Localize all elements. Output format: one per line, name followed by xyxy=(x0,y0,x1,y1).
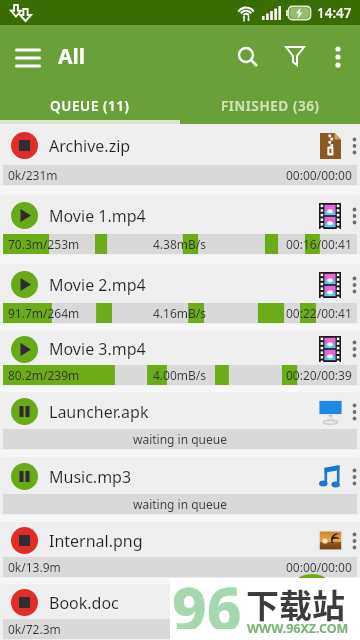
staticText: 0k/72.3m xyxy=(8,621,61,637)
staticText: Movie 3.mp4 xyxy=(49,338,146,360)
button[interactable]: Movie 1.mp4 xyxy=(0,195,360,233)
staticText: 96 xyxy=(172,567,242,629)
staticText: Book.doc xyxy=(49,592,119,614)
button[interactable]: Movie 2.mp4 xyxy=(0,264,360,302)
staticText: waiting in queue xyxy=(133,431,227,447)
button[interactable] xyxy=(274,33,318,81)
button[interactable]: Movie 3.mp4 xyxy=(0,331,360,364)
staticText: Movie 1.mp4 xyxy=(49,205,146,227)
staticText: 00:00/00:00 xyxy=(286,559,352,575)
staticText: Movie 2.mp4 xyxy=(49,274,146,296)
staticText: 14:47 xyxy=(317,4,352,22)
staticText: 4.38mB/s xyxy=(153,236,207,252)
staticText: 下载站 xyxy=(246,580,345,628)
staticText: 0k/13.9m xyxy=(8,559,61,575)
staticText: 91.7m/264m xyxy=(8,305,80,321)
button[interactable] xyxy=(318,33,358,81)
button[interactable]: Book.doc xyxy=(0,584,360,618)
staticText: 00:16/00:41 xyxy=(286,236,352,252)
button[interactable] xyxy=(285,574,339,628)
button[interactable] xyxy=(226,33,270,81)
button[interactable]: QUEUE (11) xyxy=(0,88,180,124)
button[interactable]: Archive.zip xyxy=(0,124,360,164)
button[interactable]: Launcher.apk xyxy=(0,392,360,428)
staticText: WWW.96XZ.COM xyxy=(247,620,349,637)
staticText: 00:00/00:00 xyxy=(286,167,352,183)
button[interactable] xyxy=(6,33,50,81)
button[interactable]: Music.mp3 xyxy=(0,457,360,493)
staticText: Archive.zip xyxy=(49,135,131,157)
staticText: Music.mp3 xyxy=(49,466,132,488)
staticText: All xyxy=(58,42,86,71)
staticText: 0k/231m xyxy=(8,167,58,183)
staticText: 80.2m/239m xyxy=(8,367,80,383)
staticText: FINISHED (36) xyxy=(221,97,320,115)
staticText: QUEUE (11) xyxy=(50,97,130,115)
staticText: 70.3m/253m xyxy=(8,236,80,252)
button[interactable]: FINISHED (36) xyxy=(180,88,360,124)
staticText: Internal.png xyxy=(49,530,143,552)
button[interactable]: Internal.png xyxy=(0,522,360,556)
staticText: waiting in queue xyxy=(133,496,227,512)
staticText: Launcher.apk xyxy=(49,401,149,423)
staticText: 00:20/00:39 xyxy=(286,367,352,383)
staticText: 4.00mB/s xyxy=(153,367,207,383)
staticText: 00:22/00:41 xyxy=(286,305,352,321)
staticText: 4.16mB/s xyxy=(153,305,207,321)
staticText: 00:00/00:00 xyxy=(286,621,352,637)
